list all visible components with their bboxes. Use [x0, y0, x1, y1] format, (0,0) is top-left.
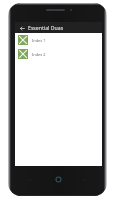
staticText: Index 2	[32, 52, 46, 57]
button[interactable]: Index 2	[15, 47, 102, 61]
button[interactable]: Back	[18, 24, 26, 32]
staticText: Essential Duas	[28, 24, 64, 31]
button[interactable]: Index 1	[15, 33, 102, 47]
staticText: Index 1	[32, 38, 46, 43]
